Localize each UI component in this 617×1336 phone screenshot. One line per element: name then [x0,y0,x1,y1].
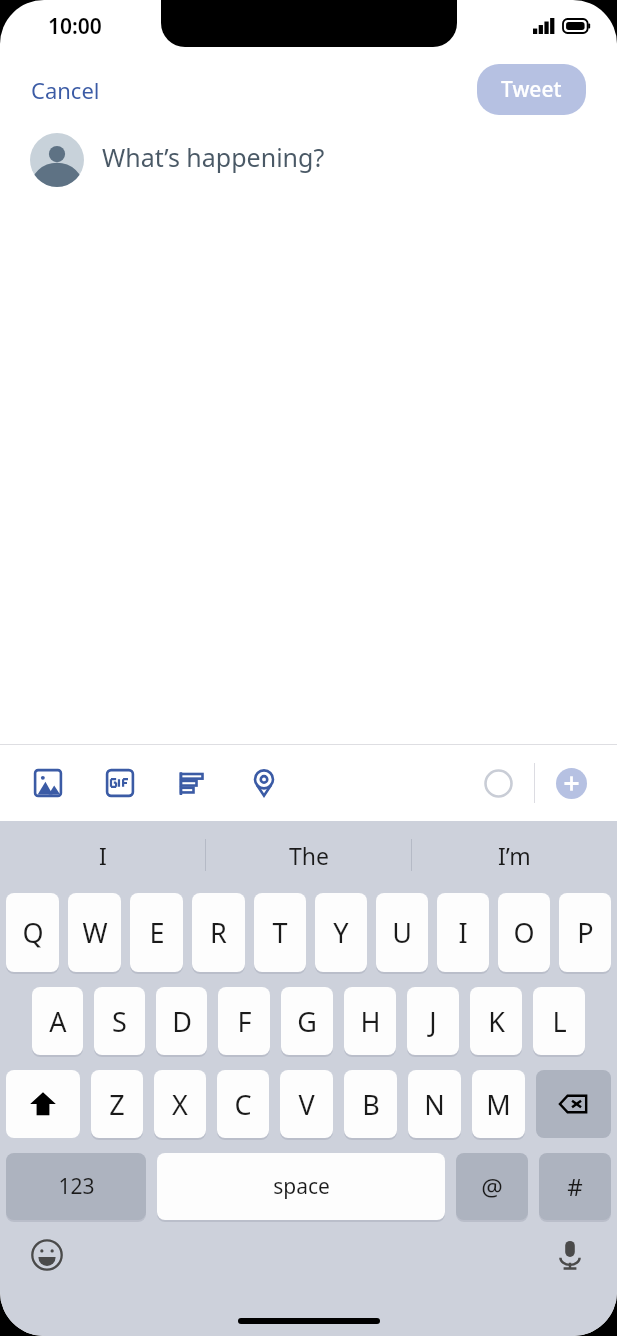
button[interactable]: Add poll [168,759,216,807]
staticText: The [289,840,329,871]
button[interactable]: # [539,1153,611,1220]
button[interactable]: 123 [6,1153,146,1220]
button[interactable]: A [32,987,83,1055]
button[interactable]: Dictation [545,1230,595,1280]
staticText: O [513,914,535,951]
staticText: A [49,1003,67,1040]
button[interactable]: Backspace [536,1070,611,1138]
staticText: # [567,1170,583,1203]
button[interactable]: Q [6,893,59,972]
staticText: space [273,1172,330,1201]
button[interactable]: J [407,987,459,1055]
staticText: S [112,1003,127,1040]
button[interactable]: K [470,987,522,1055]
button[interactable]: @ [456,1153,528,1220]
button[interactable]: S [94,987,145,1055]
staticText: I’m [498,840,531,871]
button[interactable]: V [280,1070,333,1138]
staticText: Q [22,914,44,951]
staticText: T [272,914,288,951]
button[interactable]: P [559,893,611,972]
button[interactable]: Add location [240,759,288,807]
staticText: M [486,1086,511,1123]
staticText: P [577,914,594,951]
staticText: N [424,1086,445,1123]
button[interactable]: F [218,987,270,1055]
staticText: X [172,1086,188,1123]
button[interactable]: L [533,987,585,1055]
staticText: V [298,1086,315,1123]
staticText: What’s happening? [102,140,325,174]
button[interactable]: Character count [476,761,520,805]
button[interactable]: C [217,1070,269,1138]
button[interactable]: Shift [6,1070,80,1138]
staticText: C [234,1086,252,1123]
button[interactable]: U [376,893,428,972]
staticText: I [458,914,468,951]
staticText: J [429,1003,437,1040]
button[interactable]: E [130,893,183,972]
button[interactable]: Z [91,1070,143,1138]
staticText: B [362,1086,380,1123]
staticText: E [149,914,165,951]
staticText: Z [109,1086,125,1123]
staticText: I [99,840,107,871]
button[interactable]: D [156,987,207,1055]
button[interactable]: space [157,1153,445,1220]
button[interactable]: The [206,821,411,889]
staticText: R [210,914,227,951]
staticText: @ [481,1170,503,1203]
button[interactable]: Cancel [18,67,113,113]
button[interactable]: B [344,1070,397,1138]
button[interactable]: R [192,893,245,972]
button[interactable]: Add tweet [549,761,593,805]
button[interactable]: X [154,1070,206,1138]
staticText: 10:00 [48,12,102,41]
button[interactable]: T [254,893,306,972]
button[interactable]: O [498,893,550,972]
staticText: D [172,1003,192,1040]
button[interactable]: Y [315,893,367,972]
staticText: H [360,1003,381,1040]
staticText: F [237,1003,252,1040]
button[interactable]: H [344,987,396,1055]
button[interactable]: M [472,1070,525,1138]
staticText: Tweet [501,75,562,104]
button[interactable]: G [281,987,333,1055]
button[interactable]: I [437,893,489,972]
staticText: Y [333,914,349,951]
button[interactable]: I’m [412,821,617,889]
button[interactable]: Tweet [477,64,586,115]
button[interactable]: Add GIF [96,759,144,807]
staticText: U [392,914,412,951]
staticText: K [488,1003,505,1040]
staticText: L [552,1003,567,1040]
button[interactable]: I [0,821,205,889]
staticText: Cancel [31,75,100,105]
button[interactable]: W [68,893,121,972]
staticText: G [297,1003,317,1040]
button[interactable]: Emoji [22,1230,72,1280]
staticText: W [82,914,108,951]
button[interactable]: Add photo [24,759,72,807]
staticText: 123 [58,1172,95,1201]
button[interactable]: N [408,1070,461,1138]
